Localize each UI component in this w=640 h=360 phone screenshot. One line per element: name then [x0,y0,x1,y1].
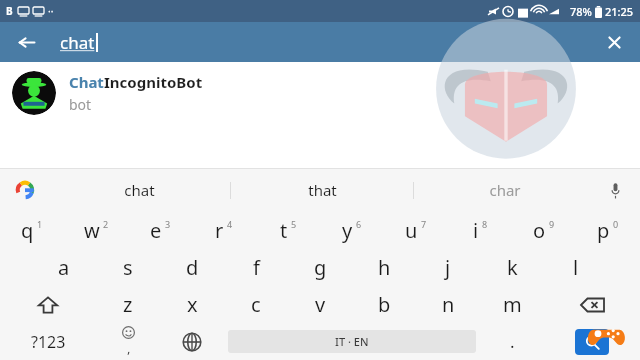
button[interactable]: h [352,249,416,286]
staticText: r [215,217,224,244]
staticText: k [507,254,518,281]
staticText: 3 [165,218,171,230]
button[interactable]: that [231,168,413,212]
staticText: chat [124,180,155,200]
staticText: t [280,217,288,244]
staticText: ?123 [31,331,66,353]
button[interactable]: ?123 [0,323,96,360]
button[interactable]: Backspace [544,286,640,323]
button[interactable]: v [288,286,352,323]
button[interactable]: o [512,212,576,249]
button[interactable]: r [192,212,256,249]
button[interactable]: g [288,249,352,286]
button[interactable]: y [320,212,384,249]
button[interactable]: IT · EN [228,330,476,353]
button[interactable]: z [96,286,160,323]
staticText: n [442,291,455,318]
staticText: Chat [69,72,104,92]
staticText: h [378,254,391,281]
staticText: e [150,217,162,244]
staticText: 7 [421,218,427,230]
staticText: w [84,217,100,244]
button[interactable]: n [416,286,480,323]
staticText: p [597,217,610,244]
button[interactable]: d [160,249,224,286]
button[interactable]: e [128,212,192,249]
staticText: chat [60,31,95,54]
staticText: 8 [482,218,488,230]
button[interactable]: i [448,212,512,249]
staticText: d [186,254,199,281]
button[interactable]: w [64,212,128,249]
staticText: . [510,330,515,353]
button[interactable]: t [256,212,320,249]
staticText: 6 [356,218,362,230]
button[interactable]: Back [12,28,40,56]
button[interactable]: char [414,168,596,212]
staticText: i [473,217,479,244]
staticText: IncognitoBot [104,72,203,92]
staticText: char [489,180,521,200]
staticText: m [503,291,522,318]
button[interactable]: k [480,249,544,286]
button[interactable]: chat [48,168,230,212]
button[interactable]: c [224,286,288,323]
staticText: bot [69,95,92,114]
staticText: x [187,291,198,318]
button[interactable]: Emoji [96,323,160,360]
staticText: a [58,254,70,281]
button[interactable]: l [544,249,608,286]
button[interactable]: s [96,249,160,286]
staticText: z [123,291,133,318]
staticText: 4 [227,218,233,230]
staticText: o [533,217,546,244]
button[interactable]: x [160,286,224,323]
staticText: , [127,339,131,357]
staticText: u [405,217,418,244]
button[interactable]: Shift [0,286,96,323]
button[interactable]: j [416,249,480,286]
staticText: 78% [570,4,592,19]
button[interactable]: Chat [0,62,640,124]
staticText: b [378,291,391,318]
staticText: 2 [103,218,109,230]
staticText: IT · EN [335,334,369,349]
staticText: c [251,291,261,318]
staticText: that [308,180,337,200]
button[interactable]: a [32,249,96,286]
staticText: s [123,254,133,281]
staticText: v [315,291,326,318]
staticText: f [253,254,260,281]
button[interactable]: Clear search [600,28,628,56]
staticText: 5 [291,218,297,230]
button[interactable]: f [224,249,288,286]
staticText: y [342,217,353,244]
button[interactable]: p [576,212,640,249]
button[interactable]: m [480,286,544,323]
staticText: B [6,4,13,18]
staticText: 21:25 [605,4,634,19]
button[interactable]: Change language [160,323,224,360]
button[interactable]: Google [12,177,38,203]
button[interactable]: Search [575,329,609,355]
staticText: q [21,217,34,244]
button[interactable]: Voice input [602,177,628,203]
staticText: j [445,254,451,281]
button[interactable]: q [0,212,64,249]
staticText: 1 [37,218,43,230]
button[interactable]: b [352,286,416,323]
staticText: ·· [48,4,54,18]
staticText: 0 [613,218,619,230]
button[interactable]: u [384,212,448,249]
staticText: l [573,254,579,281]
staticText: 9 [549,218,555,230]
button[interactable]: . [480,323,544,360]
staticText: g [314,254,327,281]
